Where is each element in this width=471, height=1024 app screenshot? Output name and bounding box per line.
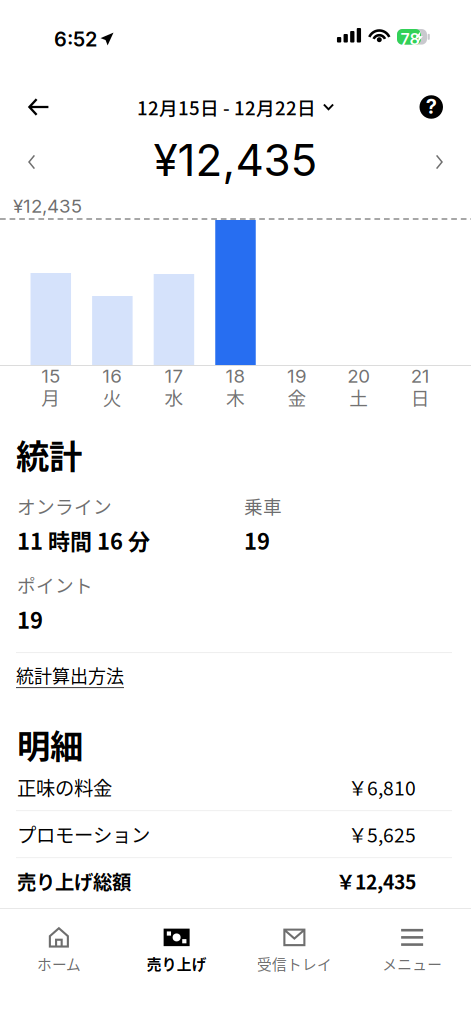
staticText: メニュー — [382, 953, 442, 974]
staticText: ホーム — [37, 953, 81, 974]
staticText: 19 — [244, 524, 270, 556]
staticText: 正味の料金 — [17, 773, 112, 801]
staticText: 乗車 — [244, 492, 282, 519]
staticText: プロモーション — [17, 820, 150, 848]
staticText: 12月15日 - 12月22日 — [137, 93, 316, 120]
button[interactable]: Back — [15, 85, 62, 129]
staticText: 金 — [288, 383, 307, 410]
staticText: 売り上げ総額 — [17, 867, 131, 895]
staticText: 16 — [102, 365, 122, 387]
button[interactable]: 統計算出方法 — [0, 653, 471, 692]
button[interactable]: Next week — [421, 139, 457, 184]
staticText: 土 — [349, 383, 368, 410]
staticText: 17 — [164, 365, 183, 387]
staticText: 78 — [400, 29, 419, 49]
button[interactable]: ホーム — [0, 920, 118, 981]
staticText: 19 — [17, 603, 43, 635]
staticText: ￥12,435 — [336, 867, 416, 895]
staticText: 月 — [41, 383, 60, 410]
button[interactable]: 12月15日 - 12月22日 — [131, 85, 340, 128]
button[interactable]: Help — [406, 82, 456, 132]
staticText: ¥12,435 — [13, 195, 82, 217]
staticText: 11 時間 16 分 — [17, 524, 150, 556]
staticText: オンライン — [17, 492, 112, 519]
staticText: ￥5,625 — [348, 820, 416, 848]
button[interactable]: メニュー — [353, 920, 471, 981]
staticText: ? — [426, 94, 437, 119]
staticText: 受信トレイ — [257, 953, 332, 974]
staticText: 19 — [287, 365, 307, 387]
staticText: 15 — [41, 365, 60, 387]
staticText: 水 — [164, 383, 183, 410]
staticText: 20 — [347, 365, 370, 387]
staticText: 18 — [225, 365, 245, 387]
staticText: 日 — [411, 383, 430, 410]
button[interactable]: 売り上げ — [118, 920, 236, 981]
staticText: ポイント — [17, 571, 93, 598]
staticText: 統計 — [16, 430, 82, 478]
staticText: 売り上げ — [147, 953, 207, 974]
staticText: ¥12,435 — [153, 133, 317, 187]
staticText: 6:52 — [54, 27, 97, 51]
staticText: 21 — [411, 365, 430, 387]
staticText: 統計算出方法 — [16, 662, 124, 688]
staticText: 火 — [103, 383, 122, 410]
staticText: 木 — [226, 383, 245, 410]
staticText: ￥6,810 — [348, 773, 416, 801]
button[interactable]: 受信トレイ — [235, 920, 353, 981]
button[interactable]: Previous week — [14, 139, 49, 184]
staticText: 明細 — [17, 720, 83, 768]
